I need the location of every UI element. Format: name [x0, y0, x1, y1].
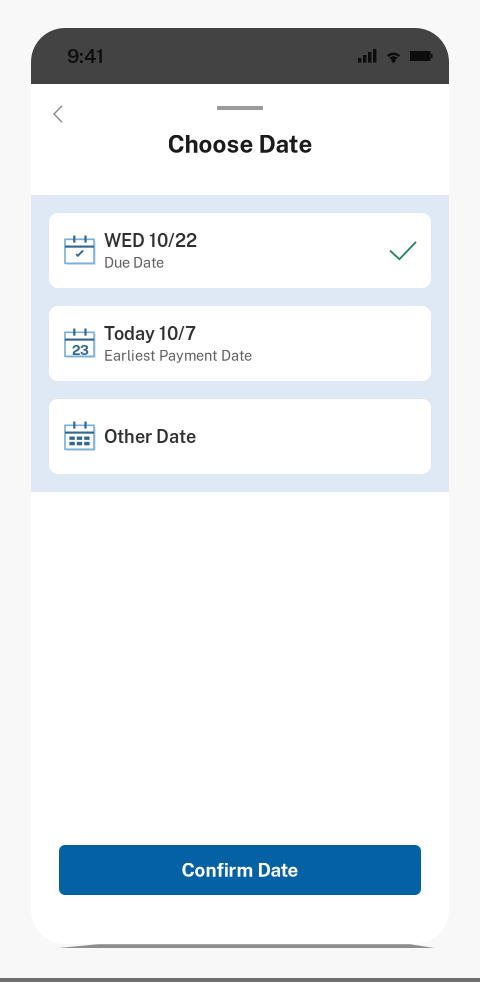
staticText: WED 10/22 — [104, 230, 197, 251]
staticText: Earliest Payment Date — [104, 347, 252, 364]
button[interactable]: 23 — [49, 306, 431, 381]
staticText: 9:41 — [67, 45, 104, 67]
staticText: Choose Date — [167, 130, 312, 158]
button[interactable]: Back — [43, 95, 74, 133]
staticText: Other Date — [104, 426, 196, 447]
button[interactable]: Other Date — [49, 399, 431, 474]
staticText: 23 — [72, 342, 89, 358]
button[interactable]: Confirm Date — [59, 845, 421, 895]
staticText: Due Date — [104, 254, 164, 271]
staticText: Today 10/7 — [104, 323, 196, 344]
staticText: Confirm Date — [181, 859, 298, 881]
button[interactable]: WED 10/22 — [49, 213, 431, 288]
